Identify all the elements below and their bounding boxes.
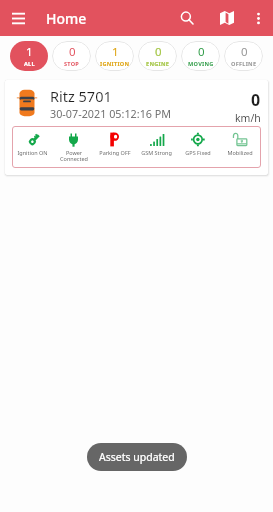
staticText: 30-07-2021 05:12:16 PM <box>50 106 172 121</box>
staticText: ALL <box>24 60 35 68</box>
staticText: Parking OFF <box>99 149 131 156</box>
button[interactable]: 0 <box>181 41 220 71</box>
button[interactable]: Assets updated <box>87 443 187 471</box>
button[interactable]: GPS Fixed <box>177 132 219 156</box>
staticText: Power Connected <box>60 149 88 163</box>
staticText: Assets updated <box>99 450 175 464</box>
staticText: Home <box>46 9 87 28</box>
staticText: OFFLINE <box>231 60 257 68</box>
staticText: Ignition ON <box>17 149 48 156</box>
button[interactable]: GSM Strong <box>135 132 177 156</box>
staticText: 0 <box>251 89 261 111</box>
button[interactable]: More options <box>244 4 272 32</box>
button[interactable]: Search <box>170 1 204 35</box>
staticText: ENGINE <box>146 60 170 68</box>
button[interactable]: 0 <box>138 41 177 71</box>
staticText: MOVING <box>188 60 214 68</box>
staticText: 0 <box>69 44 76 60</box>
button[interactable]: Menu <box>2 2 34 34</box>
staticText: 0 <box>241 44 248 60</box>
staticText: 1 <box>26 44 33 60</box>
staticText: Ritz 5701 <box>50 86 112 106</box>
staticText: 0 <box>155 44 162 60</box>
button[interactable]: 0 <box>52 41 91 71</box>
button[interactable]: Map <box>210 1 244 35</box>
button[interactable]: Ignition ON <box>12 132 53 156</box>
button[interactable]: Power Connected <box>53 132 94 163</box>
staticText: Mobilized <box>227 149 253 156</box>
staticText: 1 <box>112 44 119 60</box>
button[interactable]: 0 <box>224 41 263 71</box>
staticText: 0 <box>198 44 205 60</box>
staticText: STOP <box>64 60 80 68</box>
staticText: GSM Strong <box>141 149 172 156</box>
button[interactable]: Mobilized <box>219 132 261 156</box>
button[interactable]: 1 <box>95 41 134 71</box>
button[interactable]: 1 <box>10 41 48 71</box>
staticText: IGNITION <box>100 60 130 68</box>
staticText: km/h <box>235 111 261 125</box>
staticText: GPS Fixed <box>185 149 211 156</box>
button[interactable]: Parking OFF <box>94 132 135 156</box>
